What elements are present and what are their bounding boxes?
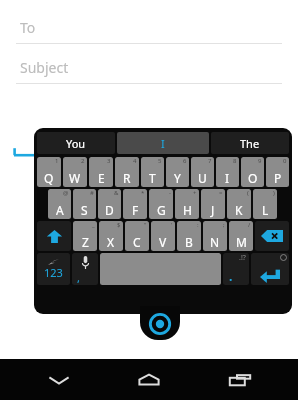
button[interactable]: ' xyxy=(151,221,175,251)
staticText: 3 xyxy=(107,157,111,165)
staticText: N xyxy=(210,234,220,250)
button[interactable]: * xyxy=(123,189,147,219)
staticText: L xyxy=(262,202,269,218)
button[interactable]: 8 xyxy=(216,157,239,187)
button[interactable]: To xyxy=(0,0,298,44)
button[interactable]: You xyxy=(37,132,115,154)
button[interactable]: Space xyxy=(100,253,221,285)
staticText: A xyxy=(56,202,64,218)
staticText: _ xyxy=(92,221,95,229)
button[interactable]: 123 xyxy=(37,253,70,285)
button[interactable]: 1 xyxy=(37,157,61,187)
staticText: 2 xyxy=(81,157,85,165)
staticText: D xyxy=(105,202,114,218)
button[interactable]: 7 xyxy=(191,157,214,187)
button[interactable]: # xyxy=(73,189,96,219)
staticText: 7 xyxy=(208,157,212,165)
staticText: R xyxy=(123,170,131,186)
button[interactable]: 5 xyxy=(141,157,164,187)
button[interactable]: 6 xyxy=(166,157,189,187)
staticText: 1 xyxy=(55,157,59,165)
button[interactable]: 9 xyxy=(241,157,264,187)
button[interactable]: $ xyxy=(99,221,123,251)
staticText: You xyxy=(66,136,86,151)
staticText: U xyxy=(198,170,207,186)
button[interactable]: ( xyxy=(227,189,251,219)
button[interactable]: = xyxy=(201,189,225,219)
button[interactable]: 2 xyxy=(63,157,87,187)
staticText: Y xyxy=(174,170,181,186)
staticText: 9 xyxy=(258,157,262,165)
button[interactable]: : xyxy=(177,221,201,251)
button[interactable]: Shift xyxy=(37,221,71,251)
staticText: : xyxy=(197,221,199,229)
staticText: 0 xyxy=(283,157,287,165)
button[interactable]: ; xyxy=(203,221,227,251)
staticText: F xyxy=(132,202,139,218)
staticText: E xyxy=(98,170,105,186)
staticText: 123 xyxy=(44,265,63,280)
staticText: K xyxy=(235,202,243,218)
button[interactable]: - xyxy=(149,189,173,219)
button[interactable]: I xyxy=(117,132,209,154)
staticText: X xyxy=(107,234,115,250)
staticText: C xyxy=(133,234,141,250)
button[interactable]: / xyxy=(229,221,253,251)
staticText: ( xyxy=(247,189,249,197)
staticText: & xyxy=(114,189,119,197)
staticText: Z xyxy=(82,234,89,250)
staticText: 6 xyxy=(183,157,187,165)
button[interactable]: 4 xyxy=(115,157,139,187)
staticText: P xyxy=(274,170,282,186)
staticText: Subject xyxy=(20,58,69,77)
button[interactable]: + xyxy=(175,189,199,219)
button[interactable]: Hide keyboard xyxy=(27,359,91,400)
staticText: ) xyxy=(273,189,275,197)
button[interactable]: Home xyxy=(117,359,181,400)
staticText: / xyxy=(248,221,251,229)
staticText: # xyxy=(90,189,94,197)
button[interactable]: 3 xyxy=(89,157,113,187)
staticText: B xyxy=(185,234,193,250)
staticText: .!? xyxy=(239,253,246,263)
staticText: O xyxy=(248,170,258,186)
staticText: The xyxy=(240,136,260,151)
button[interactable]: Voice input xyxy=(72,253,98,285)
staticText: I xyxy=(161,136,165,151)
staticText: + xyxy=(193,189,197,197)
staticText: ; xyxy=(223,221,225,229)
button[interactable]: Backspace xyxy=(255,221,289,251)
staticText: M xyxy=(236,234,247,250)
staticText: , xyxy=(77,270,80,285)
button[interactable]: Subject xyxy=(0,44,298,84)
staticText: 4 xyxy=(133,157,137,165)
button[interactable]: .!? xyxy=(223,253,249,285)
staticText: . xyxy=(229,268,233,284)
button[interactable]: ) xyxy=(253,189,277,219)
button[interactable]: Recent apps xyxy=(208,359,272,400)
button[interactable]: " xyxy=(125,221,149,251)
staticText: To xyxy=(20,18,36,37)
staticText: G xyxy=(157,202,166,218)
button[interactable]: @ xyxy=(48,189,71,219)
button[interactable]: The xyxy=(211,132,289,154)
button[interactable]: 0 xyxy=(266,157,289,187)
button[interactable]: _ xyxy=(73,221,97,251)
staticText: 5 xyxy=(158,157,162,165)
button[interactable]: Enter xyxy=(251,253,289,285)
staticText: V xyxy=(159,234,167,250)
staticText: S xyxy=(81,202,88,218)
staticText: H xyxy=(183,202,192,218)
staticText: J xyxy=(211,202,215,218)
button[interactable]: Move keyboard xyxy=(140,306,180,340)
staticText: Q xyxy=(44,170,54,186)
staticText: " xyxy=(144,221,147,229)
button[interactable]: & xyxy=(98,189,121,219)
staticText: 8 xyxy=(233,157,237,165)
staticText: I xyxy=(225,170,230,186)
staticText: * xyxy=(141,189,145,197)
staticText: T xyxy=(149,170,156,186)
staticText: - xyxy=(169,189,171,197)
staticText: W xyxy=(69,170,81,186)
staticText: $ xyxy=(117,221,121,229)
